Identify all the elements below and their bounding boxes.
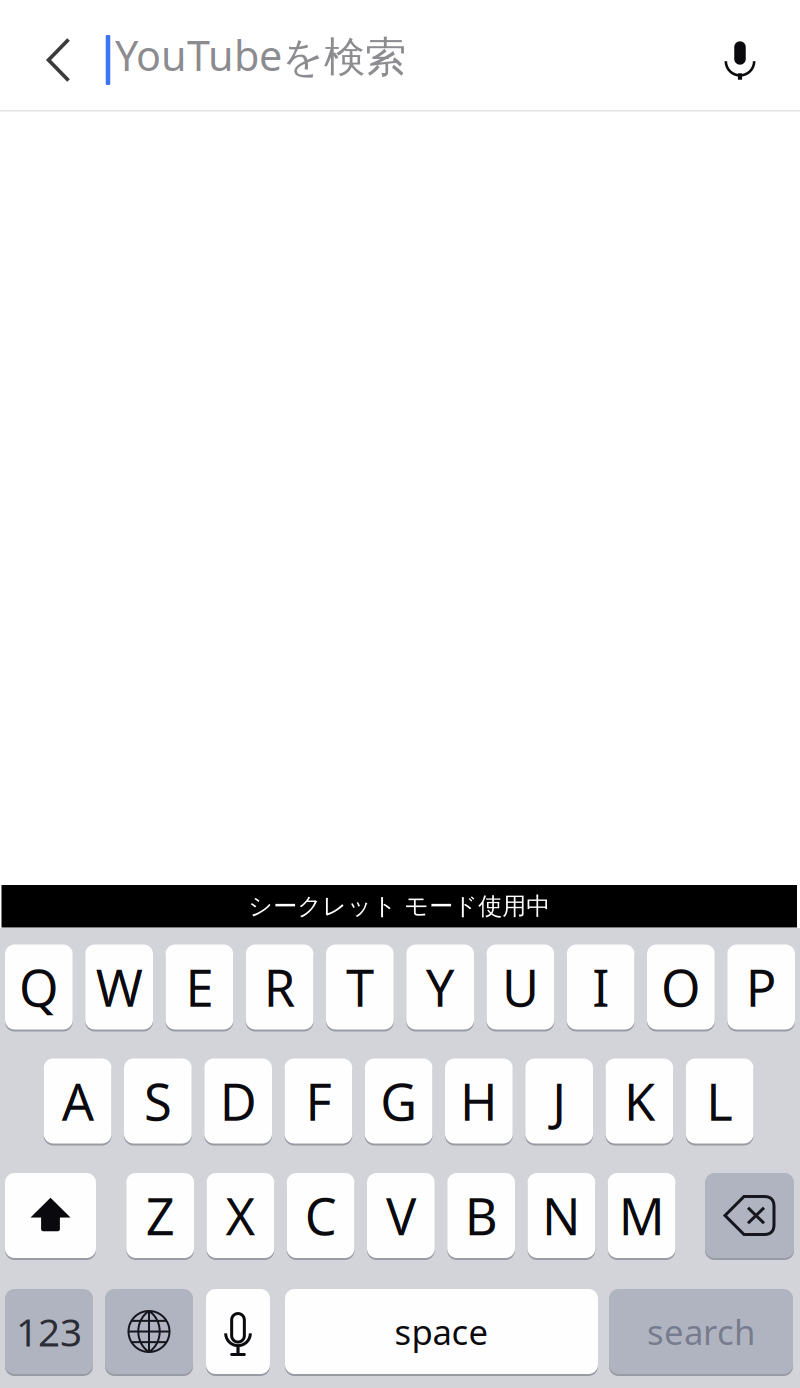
button[interactable]: N: [527, 1173, 595, 1258]
staticText: J: [552, 1067, 566, 1135]
staticText: B: [465, 1182, 498, 1249]
staticText: L: [706, 1067, 733, 1135]
staticText: 123: [16, 1306, 82, 1357]
button[interactable]: G: [365, 1058, 433, 1143]
button[interactable]: Shift: [5, 1173, 96, 1258]
button[interactable]: 123: [5, 1289, 93, 1374]
button[interactable]: I: [567, 944, 635, 1029]
staticText: Y: [426, 953, 455, 1021]
button[interactable]: S: [124, 1058, 192, 1143]
staticText: Z: [146, 1182, 175, 1249]
staticText: P: [746, 953, 777, 1021]
staticText: space: [394, 1308, 488, 1354]
button[interactable]: R: [246, 944, 314, 1029]
staticText: シークレット モード使用中: [248, 891, 550, 921]
button[interactable]: search: [609, 1289, 793, 1374]
staticText: S: [144, 1067, 172, 1135]
button[interactable]: O: [647, 944, 715, 1029]
staticText: G: [380, 1067, 417, 1135]
staticText: C: [305, 1182, 337, 1249]
button[interactable]: J: [525, 1058, 593, 1143]
button[interactable]: B: [447, 1173, 515, 1258]
button[interactable]: space: [285, 1289, 598, 1374]
staticText: K: [624, 1067, 655, 1135]
button[interactable]: T: [326, 944, 394, 1029]
button[interactable]: F: [284, 1058, 352, 1143]
staticText: Q: [19, 953, 59, 1021]
button[interactable]: E: [165, 944, 233, 1029]
button[interactable]: V: [367, 1173, 435, 1258]
staticText: D: [220, 1067, 257, 1135]
button[interactable]: X: [206, 1173, 274, 1258]
staticText: M: [619, 1182, 665, 1249]
staticText: R: [264, 953, 296, 1021]
button[interactable]: A: [44, 1058, 112, 1143]
staticText: X: [225, 1182, 255, 1249]
button[interactable]: U: [486, 944, 554, 1029]
button[interactable]: Voice search: [703, 0, 777, 110]
staticText: H: [460, 1067, 498, 1135]
button[interactable]: K: [605, 1058, 673, 1143]
staticText: A: [62, 1067, 94, 1135]
button[interactable]: W: [85, 944, 153, 1029]
button[interactable]: Q: [5, 944, 73, 1029]
button[interactable]: L: [686, 1058, 754, 1143]
staticText: U: [502, 953, 539, 1021]
button[interactable]: Next keyboard: [105, 1289, 193, 1374]
staticText: E: [185, 953, 213, 1021]
staticText: V: [386, 1182, 416, 1249]
staticText: F: [305, 1067, 331, 1135]
button[interactable]: Back: [18, 0, 98, 110]
staticText: N: [542, 1182, 581, 1249]
staticText: T: [346, 953, 374, 1021]
button[interactable]: D: [204, 1058, 272, 1143]
button[interactable]: P: [727, 944, 795, 1029]
button[interactable]: C: [287, 1173, 355, 1258]
staticText: W: [96, 953, 143, 1021]
staticText: search: [647, 1308, 755, 1354]
staticText: O: [661, 953, 701, 1021]
button[interactable]: M: [608, 1173, 676, 1258]
button[interactable]: Z: [126, 1173, 194, 1258]
button[interactable]: Dictate: [206, 1289, 270, 1374]
button[interactable]: Y: [406, 944, 474, 1029]
staticText: YouTubeを検索: [115, 27, 406, 82]
staticText: I: [592, 953, 609, 1021]
button[interactable]: Delete: [705, 1173, 794, 1258]
button[interactable]: H: [445, 1058, 513, 1143]
